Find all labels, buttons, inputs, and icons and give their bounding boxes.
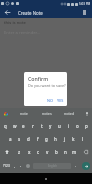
button[interactable]: r xyxy=(28,119,37,132)
staticText: a xyxy=(9,136,12,142)
staticText: j xyxy=(64,136,66,142)
staticText: b xyxy=(55,149,58,155)
staticText: d xyxy=(27,136,30,142)
button[interactable]: o xyxy=(73,119,82,132)
staticText: g xyxy=(45,136,48,142)
staticText: w xyxy=(13,123,17,129)
button[interactable]: f xyxy=(33,132,42,145)
staticText: , xyxy=(14,163,16,168)
button[interactable]: a xyxy=(5,132,15,145)
staticText: p xyxy=(85,123,88,129)
staticText: noted xyxy=(64,111,75,116)
staticText: h xyxy=(54,136,57,142)
button[interactable]: g xyxy=(42,132,51,145)
staticText: m xyxy=(72,149,77,155)
button[interactable]: NO xyxy=(45,97,55,104)
staticText: NO xyxy=(47,98,53,103)
button[interactable]: w xyxy=(10,119,19,132)
button[interactable]: Voice input xyxy=(81,108,92,119)
button[interactable]: q xyxy=(1,119,10,132)
button[interactable]: u xyxy=(55,119,64,132)
button[interactable]: noted xyxy=(58,108,81,119)
button[interactable]: x xyxy=(24,145,34,158)
button[interactable]: m xyxy=(70,145,79,158)
staticText: Enter a reminder... xyxy=(4,30,40,36)
button[interactable]: Save note xyxy=(78,7,90,18)
staticText: this is note xyxy=(4,20,26,26)
button[interactable]: Switch language xyxy=(18,158,24,173)
button[interactable]: z xyxy=(14,145,24,158)
staticText: r xyxy=(32,123,34,129)
button[interactable]: Backspace xyxy=(79,145,92,158)
button[interactable]: l xyxy=(78,132,87,145)
staticText: n xyxy=(64,149,67,155)
button[interactable]: Enter xyxy=(79,158,92,173)
staticText: · xyxy=(20,163,22,169)
button[interactable]: , xyxy=(12,158,18,173)
button[interactable]: n xyxy=(61,145,70,158)
button[interactable]: . xyxy=(72,158,79,173)
staticText: t xyxy=(41,123,43,129)
staticText: ?123 xyxy=(3,164,10,168)
button[interactable]: k xyxy=(69,132,78,145)
staticText: c xyxy=(37,149,40,155)
button[interactable]: p xyxy=(82,119,91,132)
staticText: o xyxy=(76,123,79,129)
staticText: . xyxy=(75,163,77,168)
button[interactable]: notes xyxy=(35,108,58,119)
staticText: y xyxy=(49,123,52,129)
button[interactable]: s xyxy=(15,132,24,145)
button[interactable]: y xyxy=(46,119,55,132)
button[interactable]: v xyxy=(43,145,52,158)
button[interactable]: b xyxy=(52,145,61,158)
staticText: English xyxy=(48,164,57,168)
button[interactable]: j xyxy=(60,132,69,145)
staticText: k xyxy=(72,136,75,142)
staticText: 5:03 PM xyxy=(79,2,91,6)
staticText: f xyxy=(37,136,39,142)
staticText: s xyxy=(18,136,21,142)
button[interactable]: YES xyxy=(55,97,66,104)
button[interactable]: h xyxy=(51,132,60,145)
button[interactable]: e xyxy=(19,119,28,132)
button[interactable]: Shift xyxy=(0,145,14,158)
staticText: YES xyxy=(57,98,64,103)
staticText: q xyxy=(4,123,7,129)
button[interactable]: Space xyxy=(32,158,72,173)
staticText: i xyxy=(68,123,70,129)
staticText: Confirm xyxy=(28,75,49,82)
staticText: Do you want to save? xyxy=(28,83,66,88)
button[interactable]: ?123 xyxy=(0,158,12,173)
staticText: note xyxy=(20,111,28,116)
staticText: l xyxy=(82,136,84,142)
button[interactable]: c xyxy=(34,145,43,158)
staticText: u xyxy=(58,123,61,129)
button[interactable]: d xyxy=(24,132,33,145)
staticText: z xyxy=(18,149,21,155)
staticText: notes xyxy=(42,111,52,116)
button[interactable]: Navigate back xyxy=(0,7,14,18)
button[interactable]: t xyxy=(37,119,46,132)
button[interactable]: Google search xyxy=(0,108,12,119)
button[interactable]: note xyxy=(12,108,35,119)
staticText: e xyxy=(22,123,25,129)
staticText: x xyxy=(28,149,31,155)
button[interactable]: i xyxy=(64,119,73,132)
staticText: Create Note xyxy=(18,10,43,16)
staticText: v xyxy=(46,149,49,155)
button[interactable]: Emoji xyxy=(24,158,32,173)
